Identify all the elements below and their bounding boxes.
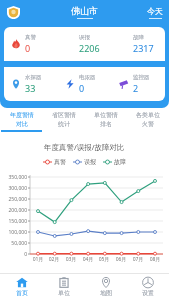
staticText: 03月: [63, 256, 79, 263]
staticText: 火警: [142, 120, 154, 128]
staticText: 省区警情: [52, 111, 76, 119]
staticText: 设置: [142, 289, 154, 297]
button[interactable]: 首页: [0, 273, 43, 300]
staticText: 佛山市: [71, 5, 98, 16]
button[interactable]: Logo: [7, 6, 20, 19]
staticText: 06月: [113, 256, 129, 263]
button[interactable]: 水探器: [4, 67, 57, 101]
staticText: 对比: [16, 120, 28, 128]
staticText: 01月: [30, 256, 46, 263]
staticText: 2317: [133, 42, 154, 54]
staticText: 100,000: [1, 229, 27, 236]
staticText: 33: [25, 82, 36, 94]
button[interactable]: 省区警情: [43, 108, 85, 132]
staticText: 排名: [100, 120, 112, 128]
staticText: 统计: [58, 120, 70, 128]
staticText: 误报: [84, 158, 96, 166]
staticText: 08月: [147, 256, 163, 263]
staticText: 真警: [25, 34, 36, 41]
staticText: 今天: [147, 6, 163, 16]
button[interactable]: 监控器: [111, 67, 165, 101]
staticText: 监控器: [133, 74, 150, 81]
staticText: 年度真警/误报/故障对比: [44, 142, 125, 152]
staticText: 0: [25, 42, 31, 54]
button[interactable]: 误报: [57, 27, 111, 61]
button[interactable]: 地图: [85, 273, 127, 300]
button[interactable]: 故障: [111, 27, 165, 61]
button[interactable]: 真警: [4, 27, 57, 61]
staticText: 单位: [58, 289, 70, 297]
staticText: 首页: [16, 289, 28, 297]
button[interactable]: 各类单位: [127, 108, 169, 132]
button[interactable]: 年度警情: [0, 108, 43, 132]
button[interactable]: 单位: [43, 273, 85, 300]
staticText: 故障: [133, 34, 144, 41]
button[interactable]: 单位警情: [85, 108, 127, 132]
staticText: 各类单位: [136, 111, 160, 119]
staticText: 07月: [130, 256, 146, 263]
staticText: 故障: [114, 158, 126, 166]
staticText: 年度警情: [10, 111, 34, 119]
staticText: 50,000: [1, 240, 27, 247]
staticText: 0: [79, 82, 85, 94]
button[interactable]: 设置: [127, 273, 169, 300]
staticText: 350,000: [1, 174, 27, 181]
button[interactable]: 电浓器: [57, 67, 111, 101]
staticText: 误报: [79, 34, 90, 41]
staticText: 04月: [80, 256, 96, 263]
staticText: 2: [133, 82, 139, 94]
staticText: 水探器: [25, 74, 42, 81]
staticText: 200,000: [1, 207, 27, 214]
staticText: 真警: [54, 158, 66, 166]
staticText: 2206: [79, 42, 100, 54]
staticText: 02月: [46, 256, 62, 263]
staticText: 单位警情: [94, 111, 118, 119]
staticText: 250,000: [1, 196, 27, 203]
staticText: 150,000: [1, 218, 27, 225]
staticText: 05月: [96, 256, 112, 263]
staticText: 地图: [100, 289, 112, 297]
staticText: 电浓器: [79, 74, 96, 81]
button[interactable]: 今天: [147, 6, 163, 19]
staticText: 0: [1, 251, 27, 258]
staticText: 300,000: [1, 185, 27, 192]
